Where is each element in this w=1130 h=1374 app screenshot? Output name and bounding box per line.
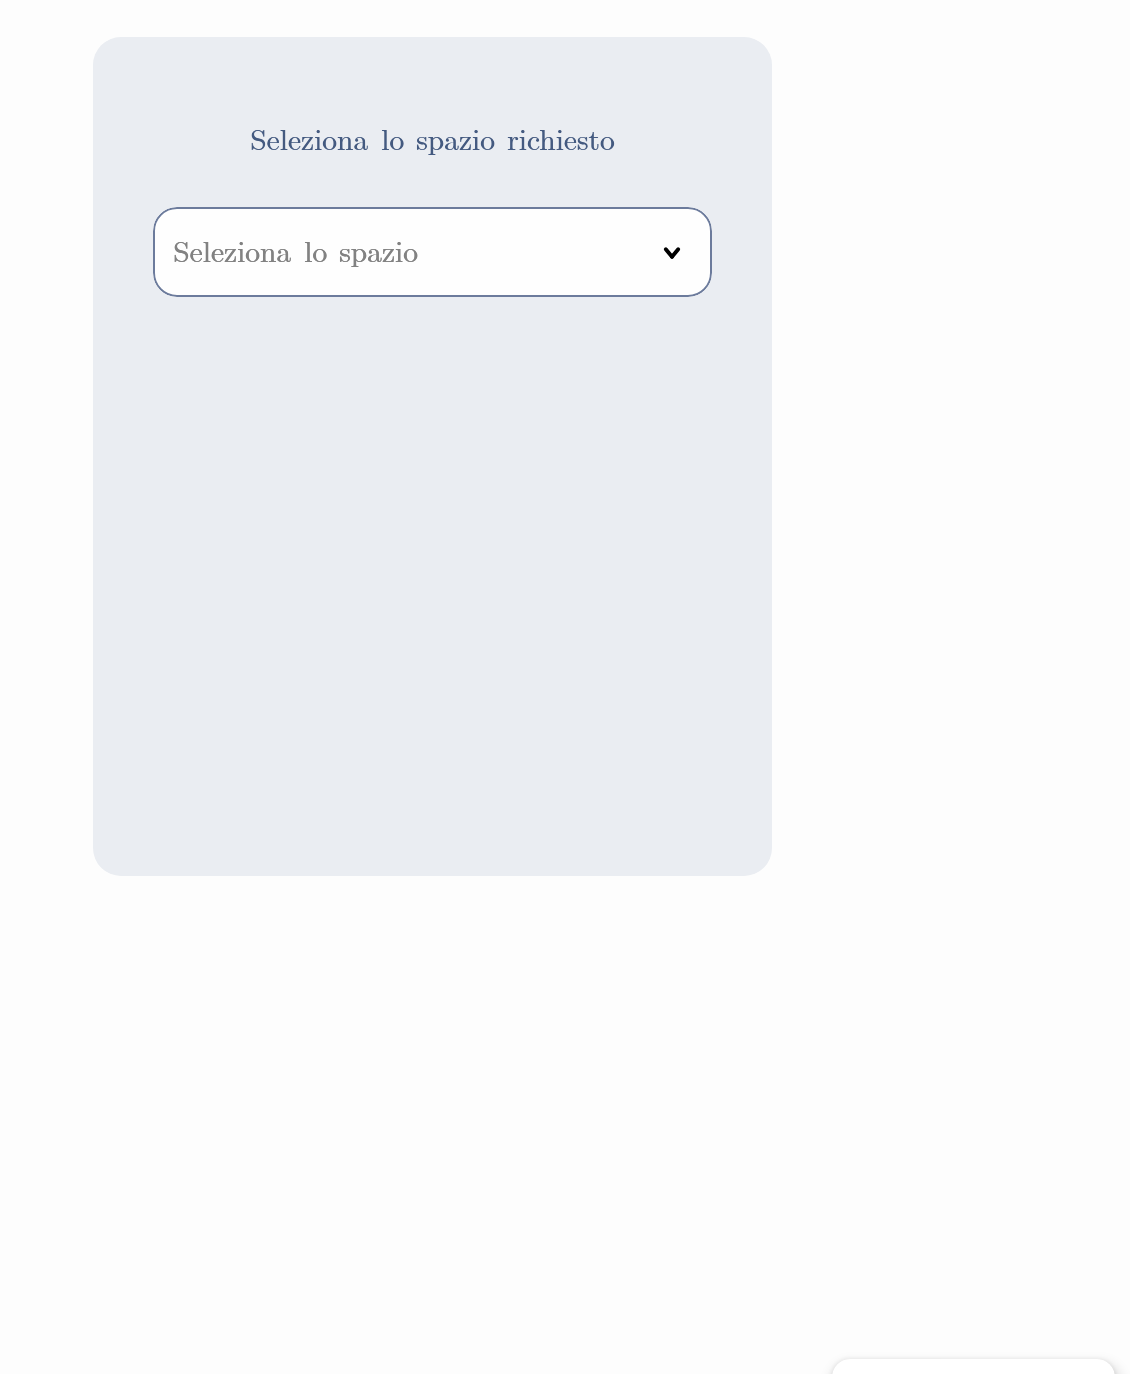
staticText: lo (304, 229, 327, 271)
staticText: spazio (339, 229, 418, 271)
staticText: spazio (416, 117, 495, 159)
staticText: lo (381, 117, 404, 159)
staticText: Seleziona (250, 117, 369, 159)
staticText: Seleziona (250, 117, 369, 159)
other: Open dropdown (659, 240, 685, 264)
staticText: richiesto (507, 117, 615, 159)
staticText: spazio (416, 117, 495, 159)
button[interactable]: Seleziona (153, 207, 712, 297)
staticText: spazio (339, 229, 418, 271)
staticText: lo (381, 117, 404, 159)
staticText: lo (304, 229, 327, 271)
staticText: Seleziona (173, 229, 292, 271)
staticText: richiesto (507, 117, 615, 159)
staticText: Seleziona (173, 229, 292, 271)
